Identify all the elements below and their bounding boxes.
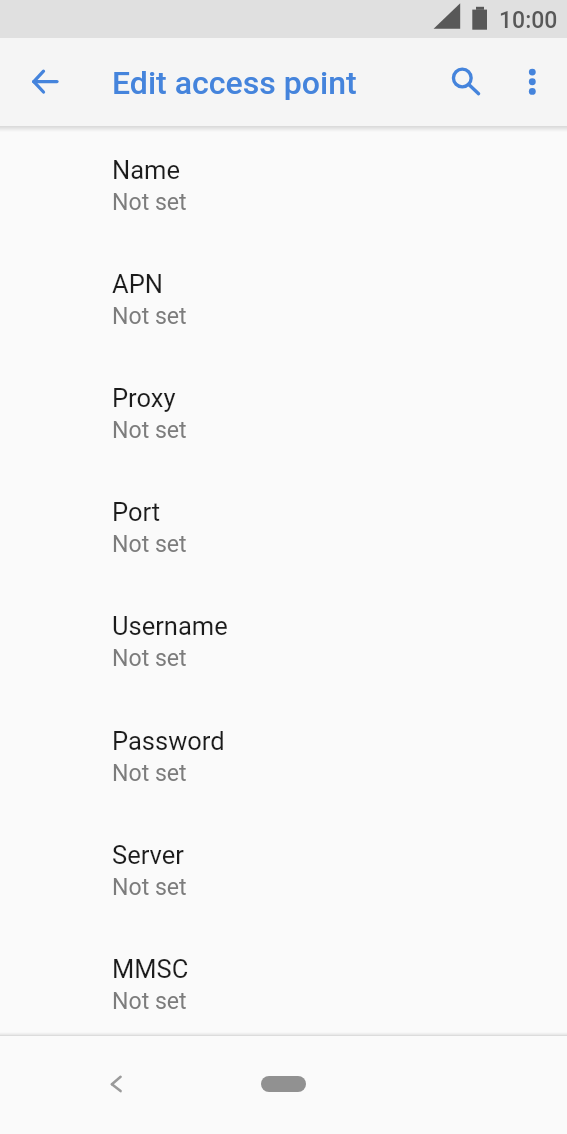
staticText: MMSC (112, 954, 189, 984)
button[interactable]: Back (92, 1060, 140, 1108)
button[interactable]: More options (513, 63, 551, 101)
button[interactable]: Port (0, 497, 567, 611)
staticText: Not set (112, 303, 187, 330)
button[interactable]: Password (0, 726, 567, 840)
staticText: Not set (112, 760, 187, 787)
staticText: Username (112, 611, 228, 641)
button[interactable]: Server (0, 840, 567, 954)
button[interactable]: MMSC (0, 954, 567, 1035)
staticText: Not set (112, 531, 187, 558)
staticText: Server (112, 840, 184, 870)
button[interactable]: Proxy (0, 383, 567, 497)
staticText: 10:00 (499, 7, 558, 34)
button[interactable]: Username (0, 611, 567, 725)
staticText: Proxy (112, 383, 176, 413)
staticText: Not set (112, 417, 187, 444)
staticText: Port (112, 497, 161, 527)
button[interactable]: Name (0, 155, 567, 269)
button[interactable]: APN (0, 269, 567, 383)
staticText: Name (112, 155, 180, 185)
staticText: APN (112, 269, 163, 299)
staticText: Not set (112, 645, 187, 672)
staticText: Edit access point (112, 64, 357, 102)
staticText: Password (112, 726, 225, 756)
button[interactable]: Home (261, 1076, 306, 1092)
button[interactable]: Search (447, 63, 485, 101)
staticText: Not set (112, 988, 187, 1015)
button[interactable]: Back (26, 63, 64, 101)
staticText: Not set (112, 874, 187, 901)
staticText: Not set (112, 189, 187, 216)
